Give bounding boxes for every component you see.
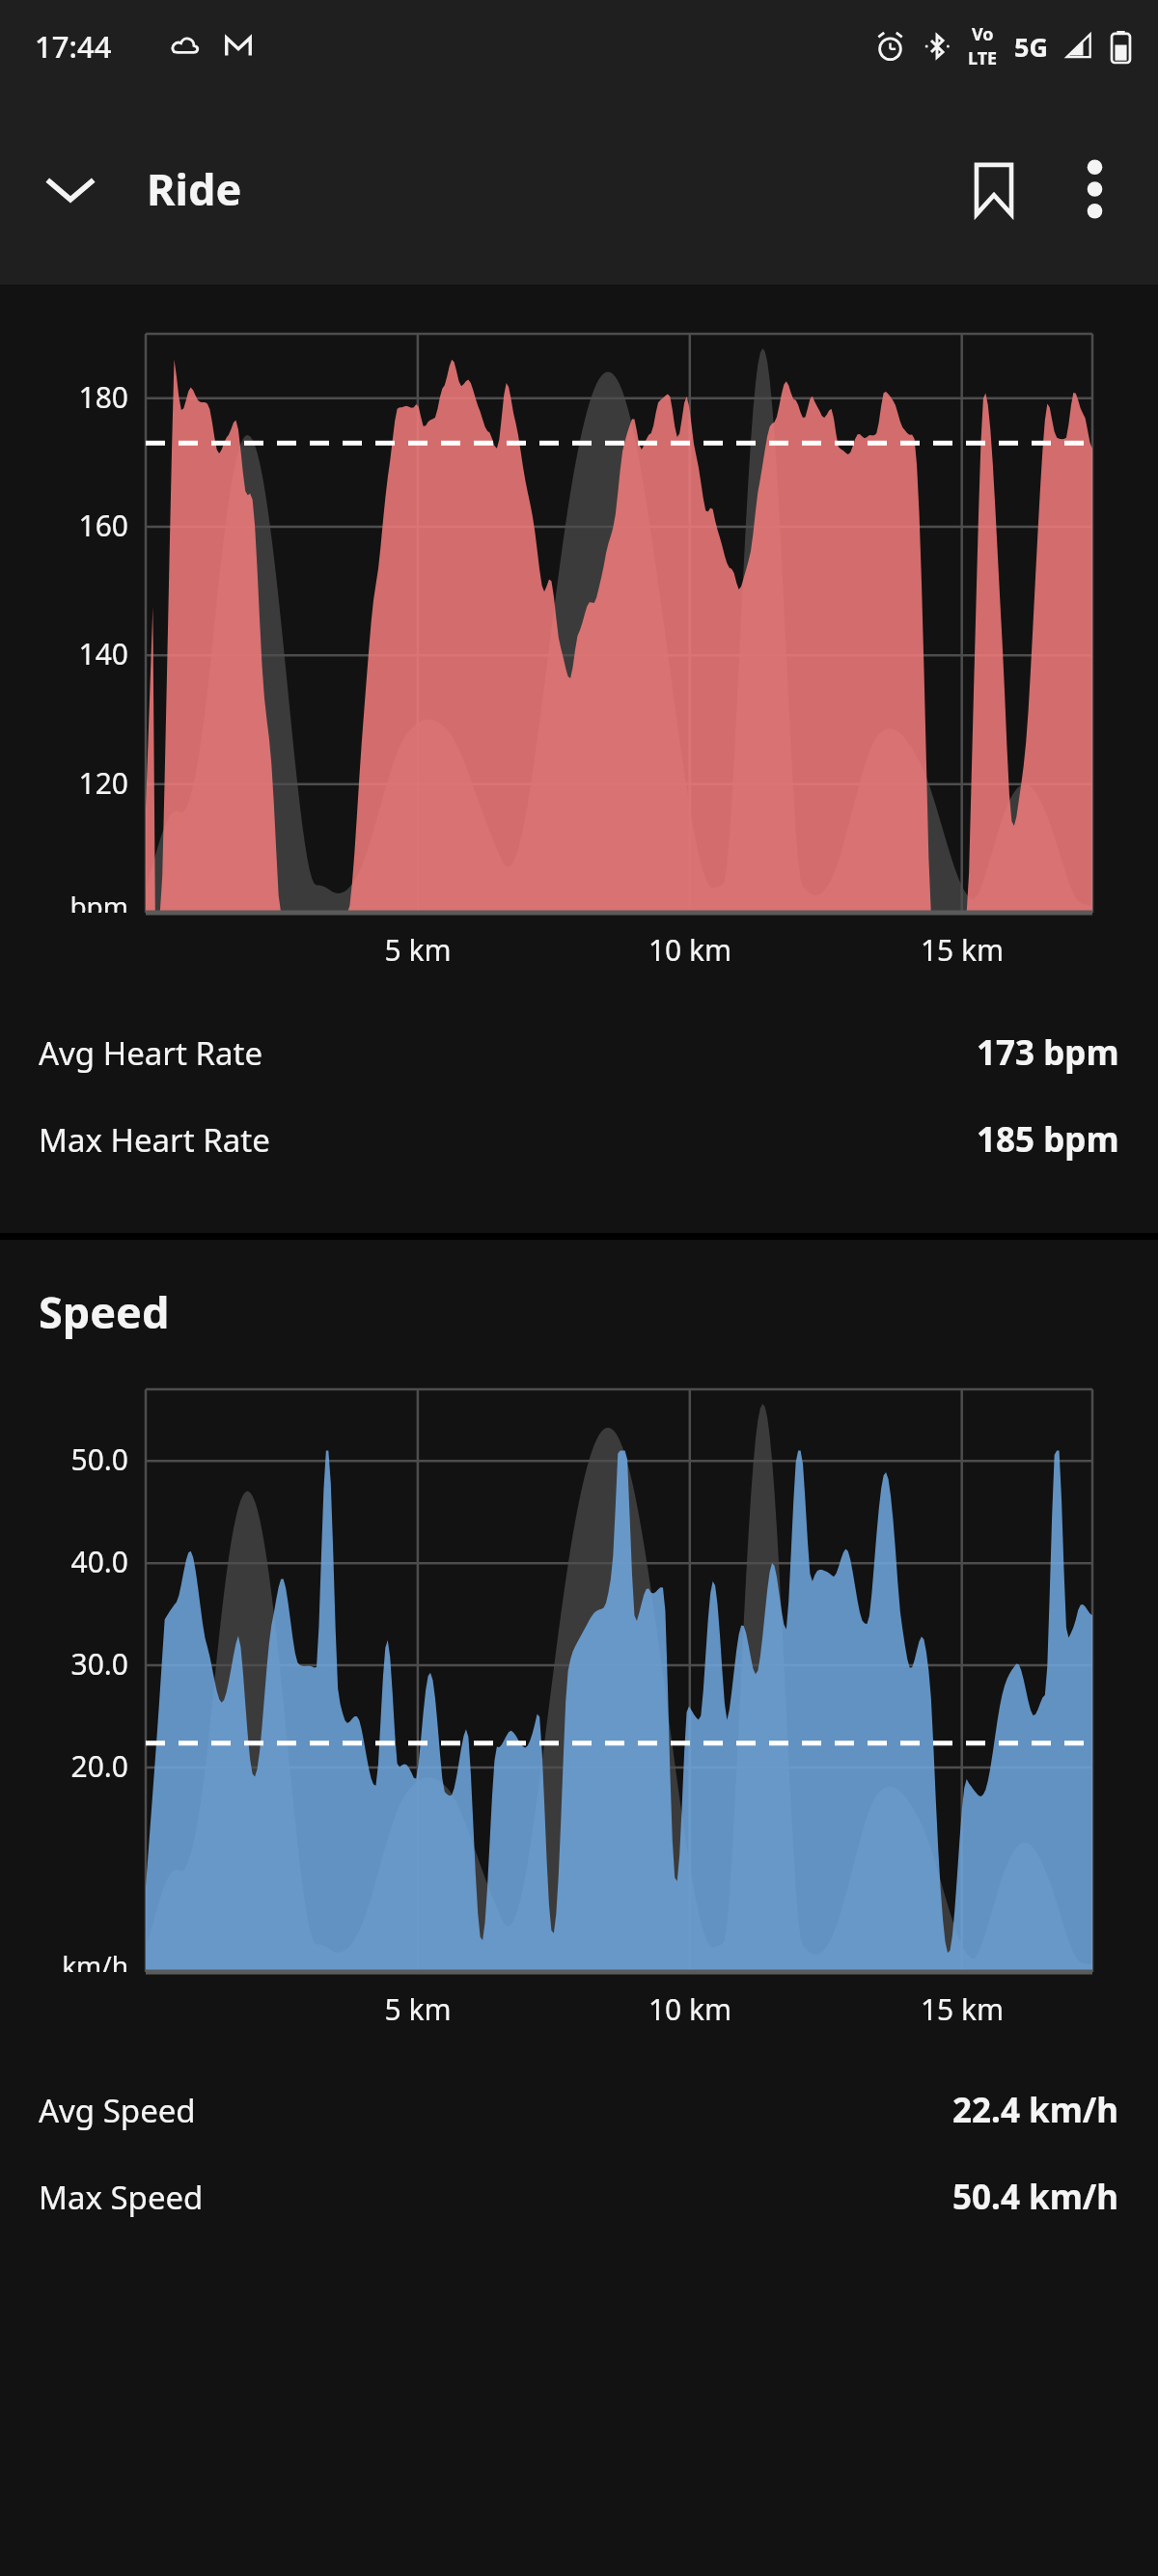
- staticText: 120: [0, 763, 128, 803]
- staticText: 173 bpm: [977, 1029, 1119, 1076]
- staticText: 180: [0, 377, 128, 417]
- button[interactable]: Bookmark: [944, 139, 1044, 239]
- staticText: 5G: [1014, 29, 1048, 65]
- button[interactable]: Avg Speed: [0, 2067, 1158, 2153]
- staticText: Speed: [39, 1282, 170, 1341]
- button[interactable]: Max Heart Rate: [0, 1096, 1158, 1183]
- staticText: 160: [0, 506, 128, 545]
- staticText: 30.0: [0, 1644, 128, 1684]
- staticText: 140: [0, 634, 128, 673]
- staticText: 5 km: [345, 1989, 490, 2029]
- staticText: Vo: [972, 22, 994, 46]
- staticText: 17:44: [35, 26, 112, 67]
- button[interactable]: Collapse: [21, 140, 120, 238]
- staticText: Ride: [147, 159, 242, 218]
- staticText: Max Heart Rate: [39, 1118, 270, 1162]
- staticText: 20.0: [0, 1746, 128, 1786]
- staticText: Max Speed: [39, 2176, 204, 2219]
- staticText: km/h: [0, 1947, 128, 1972]
- staticText: 40.0: [0, 1542, 128, 1581]
- staticText: 50.0: [0, 1439, 128, 1479]
- staticText: Avg Speed: [39, 2089, 196, 2132]
- staticText: 5 km: [345, 930, 490, 970]
- button[interactable]: Avg Heart Rate: [0, 1009, 1158, 1096]
- staticText: 10 km: [618, 1989, 762, 2029]
- staticText: 15 km: [890, 1989, 1034, 2029]
- staticText: 185 bpm: [977, 1116, 1119, 1163]
- staticText: bpm: [0, 888, 128, 913]
- staticText: 15 km: [890, 930, 1034, 970]
- staticText: LTE: [968, 46, 998, 70]
- button[interactable]: Max Speed: [0, 2153, 1158, 2240]
- button[interactable]: More options: [1044, 139, 1144, 239]
- staticText: 22.4 km/h: [952, 2087, 1119, 2133]
- staticText: 10 km: [618, 930, 762, 970]
- staticText: Avg Heart Rate: [39, 1031, 262, 1075]
- staticText: 50.4 km/h: [952, 2174, 1119, 2220]
